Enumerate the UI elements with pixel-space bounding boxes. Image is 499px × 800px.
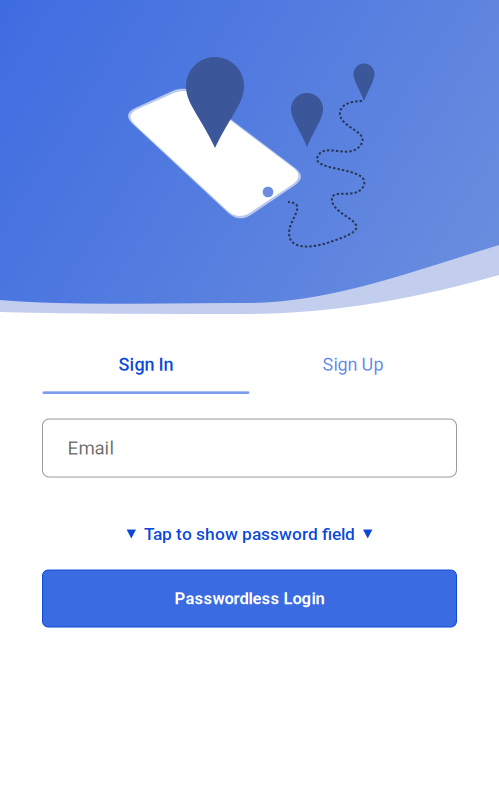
staticText: Email [67,437,114,459]
staticText: Sign In [118,354,173,375]
staticText: Sign Up [322,354,383,375]
button[interactable]: Email [42,419,456,477]
button[interactable]: Sign In [42,316,249,394]
staticText: Tap to show password field [144,524,355,544]
button[interactable]: Sign Up [249,316,456,394]
button[interactable]: Passwordless Login [42,570,456,627]
button[interactable]: Tap to show password field [42,521,456,547]
staticText: Passwordless Login [174,589,324,608]
